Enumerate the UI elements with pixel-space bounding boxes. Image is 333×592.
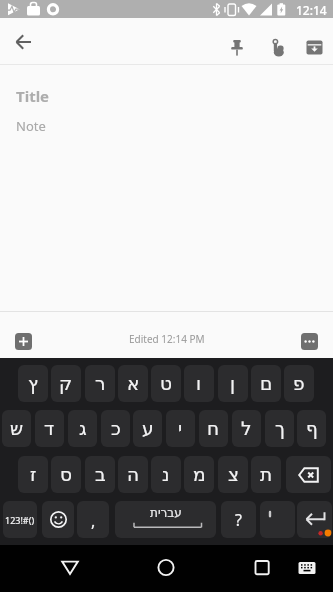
button[interactable]: ח (199, 410, 228, 447)
staticText: ש (10, 418, 24, 440)
button[interactable] (150, 552, 182, 584)
button[interactable]: Note (0, 110, 333, 136)
staticText: ע (142, 418, 154, 440)
staticText: 12:14 (296, 2, 327, 18)
button[interactable]: ג (68, 410, 97, 447)
button[interactable] (260, 32, 292, 64)
button[interactable]: ט (151, 365, 181, 402)
button[interactable] (286, 456, 331, 493)
staticText: ג (79, 418, 87, 440)
staticText: ו (196, 373, 202, 395)
button[interactable]: ל (232, 410, 261, 447)
staticText: ת (260, 464, 273, 486)
staticText: ץ (28, 373, 38, 395)
button[interactable]: נ (151, 456, 181, 493)
button[interactable]: ד (35, 410, 64, 447)
button[interactable] (294, 326, 324, 356)
button[interactable]: ס (51, 456, 81, 493)
button[interactable] (42, 501, 74, 538)
staticText: ך (275, 418, 285, 440)
button[interactable] (246, 552, 278, 584)
staticText: ז (30, 464, 37, 486)
staticText: Edited 12:14 PM (129, 332, 205, 346)
button[interactable]: ף (297, 410, 326, 447)
staticText: ן (230, 373, 236, 395)
staticText: ר (95, 373, 106, 395)
staticText: ח (207, 418, 220, 440)
button[interactable] (221, 32, 253, 64)
button[interactable]: מ (184, 456, 214, 493)
button[interactable]: ת (251, 456, 281, 493)
staticText: עברית (150, 506, 182, 520)
button[interactable]: ץ (18, 365, 48, 402)
staticText: נ (162, 464, 170, 486)
staticText: Title (16, 86, 50, 106)
button[interactable]: ? (221, 501, 256, 538)
button[interactable]: , (77, 501, 109, 538)
button[interactable] (298, 31, 330, 63)
button[interactable]: ב (85, 456, 115, 493)
staticText: ב (95, 464, 106, 486)
staticText: ט (160, 373, 172, 395)
button[interactable] (54, 552, 86, 584)
staticText: ף (306, 418, 318, 440)
staticText: ל (241, 418, 252, 440)
button[interactable]: ע (133, 410, 162, 447)
button[interactable]: 123!#() (3, 501, 37, 538)
staticText: ה (127, 464, 140, 486)
button[interactable] (8, 326, 38, 356)
button[interactable]: ר (85, 365, 115, 402)
button[interactable]: ך (265, 410, 294, 447)
button[interactable]: ו (184, 365, 214, 402)
button[interactable]: ק (51, 365, 81, 402)
button[interactable] (8, 26, 40, 58)
staticText: , (91, 510, 96, 532)
button[interactable]: כ (101, 410, 130, 447)
staticText: מ (193, 464, 206, 486)
button[interactable]: פ (284, 365, 314, 402)
button[interactable]: צ (218, 456, 248, 493)
staticText: י (178, 418, 183, 440)
button[interactable]: Title (0, 79, 333, 110)
button[interactable]: עברית (115, 501, 216, 538)
button[interactable]: ה (118, 456, 148, 493)
button[interactable] (260, 501, 295, 538)
button[interactable]: ם (251, 365, 281, 402)
staticText: ס (60, 464, 73, 486)
button[interactable] (291, 552, 323, 584)
staticText: א (127, 373, 140, 395)
button[interactable]: א (118, 365, 148, 402)
staticText: ם (260, 373, 273, 395)
staticText: Note (16, 117, 46, 135)
button[interactable]: ש (2, 410, 31, 447)
staticText: צ (228, 464, 239, 486)
button[interactable]: ז (18, 456, 48, 493)
button[interactable]: ן (218, 365, 248, 402)
button[interactable]: י (166, 410, 195, 447)
staticText: 123!#() (5, 514, 35, 526)
button[interactable] (297, 501, 332, 538)
staticText: ? (235, 509, 242, 531)
staticText: ק (59, 373, 73, 395)
staticText: פ (293, 373, 305, 395)
staticText: כ (111, 418, 121, 440)
staticText: ד (44, 418, 55, 440)
